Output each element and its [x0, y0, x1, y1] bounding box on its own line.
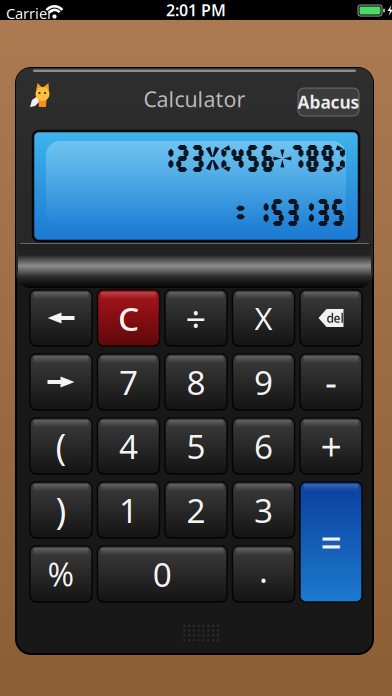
- button[interactable]: Move right: [30, 354, 92, 410]
- staticText: ÷: [185, 294, 206, 342]
- staticText: 6: [254, 424, 273, 468]
- button[interactable]: 9: [232, 354, 294, 410]
- button[interactable]: 4: [97, 418, 159, 474]
- staticText: del: [326, 310, 343, 326]
- button[interactable]: .: [232, 546, 294, 602]
- staticText: 4: [119, 424, 138, 468]
- staticText: Carrier: [6, 3, 53, 23]
- button[interactable]: 7: [97, 354, 159, 410]
- staticText: X: [254, 298, 272, 338]
- button[interactable]: %: [30, 546, 92, 602]
- staticText: +: [320, 421, 341, 471]
- staticText: =: [320, 517, 341, 567]
- button[interactable]: 2: [165, 482, 227, 538]
- button[interactable]: Abacus: [298, 88, 359, 116]
- staticText: .: [259, 548, 268, 592]
- button[interactable]: (: [30, 418, 92, 474]
- button[interactable]: Delete: [300, 290, 362, 346]
- staticText: Abacus: [297, 90, 359, 113]
- button[interactable]: ÷: [165, 290, 227, 346]
- button[interactable]: +: [300, 418, 362, 474]
- staticText: (: [55, 422, 66, 470]
- staticText: Calculator: [143, 85, 245, 113]
- button[interactable]: 3: [232, 482, 294, 538]
- button[interactable]: 5: [165, 418, 227, 474]
- staticText: 8: [186, 360, 205, 404]
- button[interactable]: X: [232, 290, 294, 346]
- staticText: 1: [119, 488, 138, 532]
- button[interactable]: 6: [232, 418, 294, 474]
- staticText: C: [118, 296, 139, 340]
- staticText: %: [47, 553, 74, 595]
- button[interactable]: 1: [97, 482, 159, 538]
- button[interactable]: 0: [97, 546, 227, 602]
- staticText: 2:01 PM: [166, 0, 226, 21]
- button[interactable]: =: [300, 482, 362, 602]
- button[interactable]: 8: [165, 354, 227, 410]
- staticText: -: [325, 357, 337, 407]
- button[interactable]: Move left: [30, 290, 92, 346]
- button[interactable]: ): [30, 482, 92, 538]
- staticText: 2: [186, 488, 205, 532]
- staticText: 0: [153, 552, 172, 596]
- staticText: 9: [254, 360, 273, 404]
- staticText: ): [55, 486, 66, 534]
- button[interactable]: -: [300, 354, 362, 410]
- staticText: 5: [186, 424, 205, 468]
- staticText: 7: [119, 360, 138, 404]
- button[interactable]: C: [97, 290, 159, 346]
- staticText: 3: [254, 488, 273, 532]
